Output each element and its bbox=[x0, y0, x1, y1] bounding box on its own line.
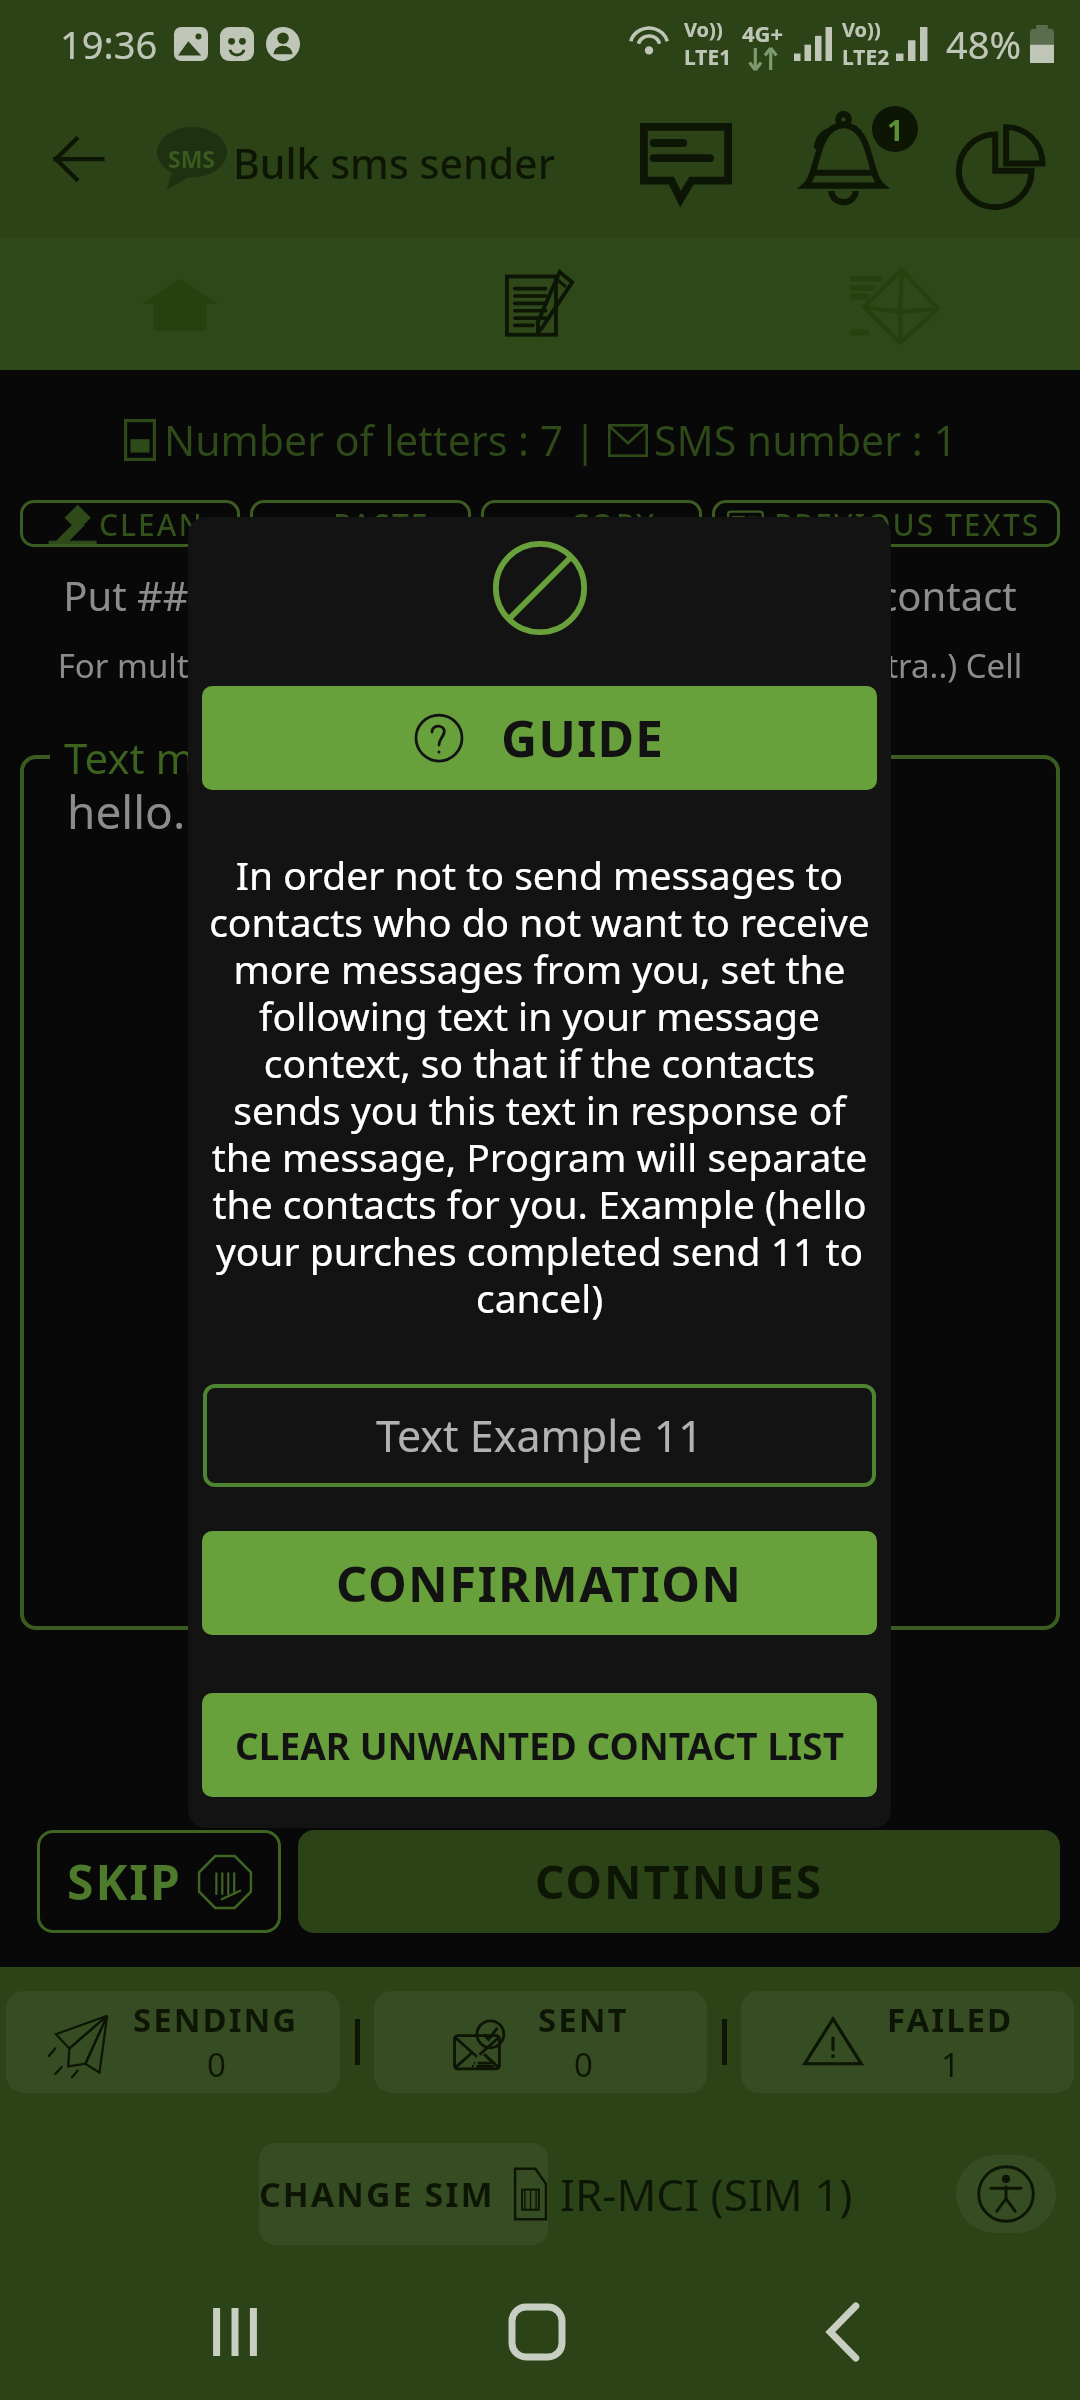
staticText: CONTINUES bbox=[535, 1850, 824, 1913]
staticText: CONFIRMATION bbox=[336, 1550, 743, 1617]
button[interactable]: CONFIRMATION bbox=[202, 1531, 877, 1635]
staticText: GUIDE bbox=[501, 704, 665, 772]
staticText: CLEAN bbox=[99, 504, 204, 545]
staticText: For multi excel file (Name##Family##Numb… bbox=[0, 643, 1080, 688]
staticText: SENT bbox=[538, 1997, 629, 2042]
staticText: LTE2 bbox=[842, 43, 890, 72]
staticText: COPY bbox=[570, 504, 656, 545]
button[interactable]: CLEAN bbox=[20, 500, 240, 547]
button[interactable]: Accessibility bbox=[956, 2155, 1056, 2233]
button[interactable]: Compose bbox=[360, 238, 720, 370]
staticText: 1 bbox=[887, 110, 904, 149]
staticText: LTE1 bbox=[684, 43, 732, 72]
button[interactable]: CLEAR UNWANTED CONTACT LIST bbox=[202, 1693, 877, 1797]
staticText: 19:36 bbox=[60, 18, 158, 70]
staticText: CHANGE SIM bbox=[259, 2171, 495, 2217]
staticText: 1 bbox=[941, 2042, 960, 2087]
button[interactable]: COPY bbox=[481, 500, 702, 547]
staticText: Vo)) bbox=[684, 16, 723, 43]
button[interactable]: Messages bbox=[620, 98, 752, 228]
staticText: Text message bbox=[64, 729, 332, 786]
button[interactable]: Text Example 11 bbox=[203, 1384, 876, 1487]
staticText: PREVIOUS TEXTS bbox=[774, 504, 1041, 545]
staticText: Put ### instead of the contact name in t… bbox=[0, 568, 1080, 622]
button[interactable]: Back bbox=[763, 2272, 923, 2392]
staticText: SKIP bbox=[67, 1849, 182, 1914]
button[interactable]: GUIDE bbox=[202, 686, 877, 790]
staticText: Vo)) bbox=[842, 16, 881, 43]
button[interactable]: hello.. bbox=[20, 755, 1060, 1630]
button[interactable]: Notifications bbox=[783, 92, 935, 234]
button[interactable]: SENT bbox=[374, 1991, 707, 2093]
button[interactable]: FAILED bbox=[741, 1991, 1074, 2093]
staticText: 4G+ bbox=[742, 18, 784, 48]
staticText: IR-MCI (SIM 1) bbox=[560, 2164, 853, 2224]
button[interactable]: Statistics bbox=[940, 98, 1064, 228]
staticText: SMS bbox=[168, 143, 216, 174]
staticText: Number of letters : 7 | bbox=[164, 412, 597, 468]
staticText: 48% bbox=[946, 18, 1022, 70]
button[interactable]: PREVIOUS TEXTS bbox=[712, 500, 1060, 547]
staticText: PASTE bbox=[333, 504, 430, 545]
staticText: Bulk sms sender bbox=[233, 135, 555, 191]
staticText: SMS number : 1 bbox=[654, 412, 957, 468]
staticText: 0 bbox=[207, 2042, 226, 2087]
button[interactable]: CHANGE SIM bbox=[259, 2143, 548, 2245]
staticText: SENDING bbox=[133, 1997, 299, 2042]
button[interactable]: CONTINUES bbox=[298, 1830, 1060, 1933]
staticText: In order not to send messages to contact… bbox=[208, 848, 871, 1324]
staticText: hello.. bbox=[67, 780, 198, 843]
button[interactable]: SENDING bbox=[6, 1991, 340, 2093]
button[interactable]: SKIP bbox=[37, 1830, 281, 1933]
staticText: FAILED bbox=[887, 1997, 1014, 2042]
staticText: CLEAR UNWANTED CONTACT LIST bbox=[235, 1720, 844, 1770]
button[interactable]: Back bbox=[19, 99, 139, 219]
button[interactable]: Recents bbox=[155, 2272, 315, 2392]
button[interactable]: PASTE bbox=[250, 500, 471, 547]
staticText: Text Example 11 bbox=[376, 1406, 703, 1465]
staticText: 0 bbox=[574, 2042, 593, 2087]
button[interactable]: Home bbox=[457, 2272, 617, 2392]
